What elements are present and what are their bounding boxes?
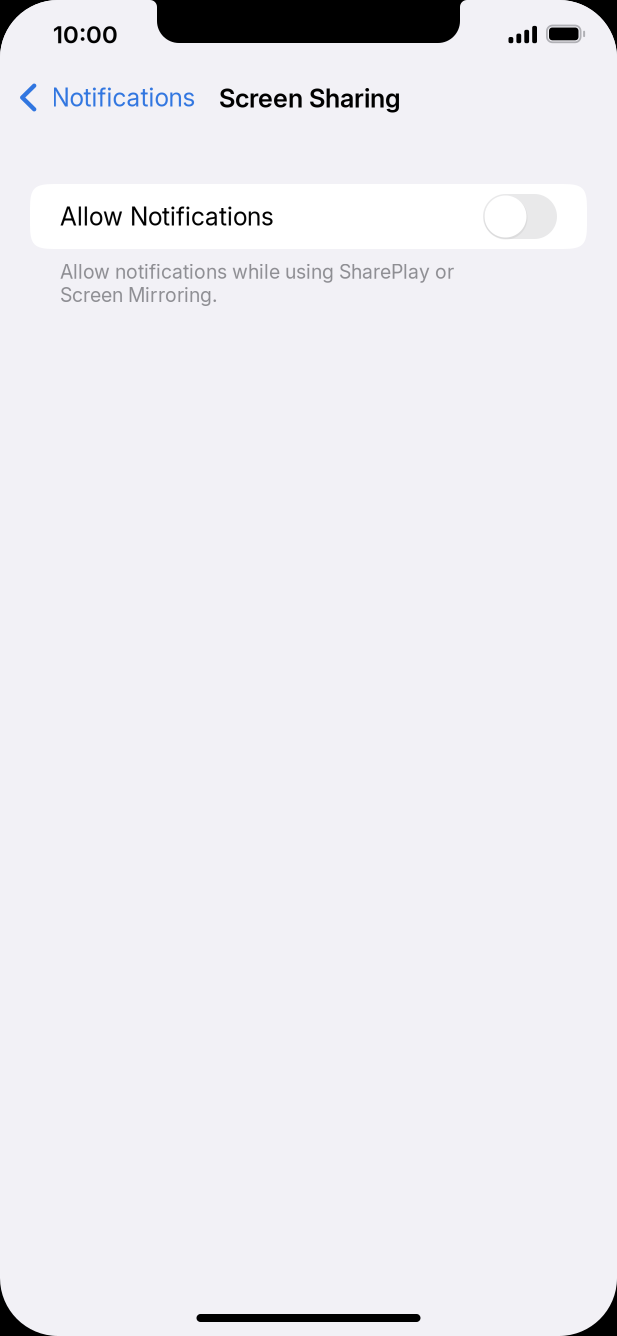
staticText: Allow Notifications	[60, 202, 274, 231]
staticText: Allow notifications while using SharePla…	[60, 260, 454, 307]
button[interactable]: Back to Notifications	[0, 70, 215, 124]
staticText: 10:00	[53, 20, 118, 49]
button[interactable]: Allow Notifications	[30, 184, 587, 249]
staticText: Screen Sharing	[219, 83, 401, 114]
staticText: Notifications	[52, 83, 196, 112]
